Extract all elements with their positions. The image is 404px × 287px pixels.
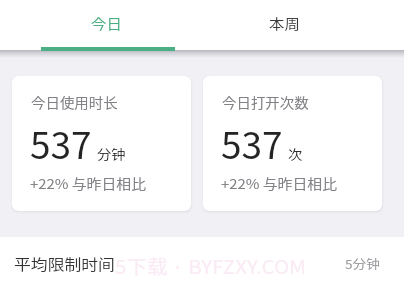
staticText: 今日打开次数 bbox=[222, 92, 309, 112]
staticText: 537 bbox=[30, 116, 92, 170]
button[interactable]: 本周 bbox=[196, 0, 374, 50]
staticText: 537 bbox=[221, 116, 283, 170]
staticText: 次 bbox=[288, 144, 303, 163]
button[interactable]: 平均限制时间 bbox=[0, 237, 404, 287]
staticText: +22% 与昨日相比 bbox=[221, 173, 338, 193]
button[interactable]: 今日打开次数 bbox=[203, 76, 382, 211]
staticText: 平均限制时间 bbox=[14, 253, 115, 274]
button[interactable]: 今日使用时长 bbox=[12, 76, 191, 211]
staticText: 今日 bbox=[91, 13, 122, 33]
staticText: 5分钟 bbox=[345, 255, 380, 272]
staticText: 本周 bbox=[269, 13, 300, 33]
staticText: 今日使用时长 bbox=[31, 92, 118, 112]
staticText: 分钟 bbox=[97, 144, 127, 163]
staticText: +22% 与昨日相比 bbox=[30, 173, 147, 193]
staticText: 5下载 · BYFZXY.COM bbox=[115, 252, 306, 280]
button[interactable]: 今日 bbox=[18, 0, 196, 50]
